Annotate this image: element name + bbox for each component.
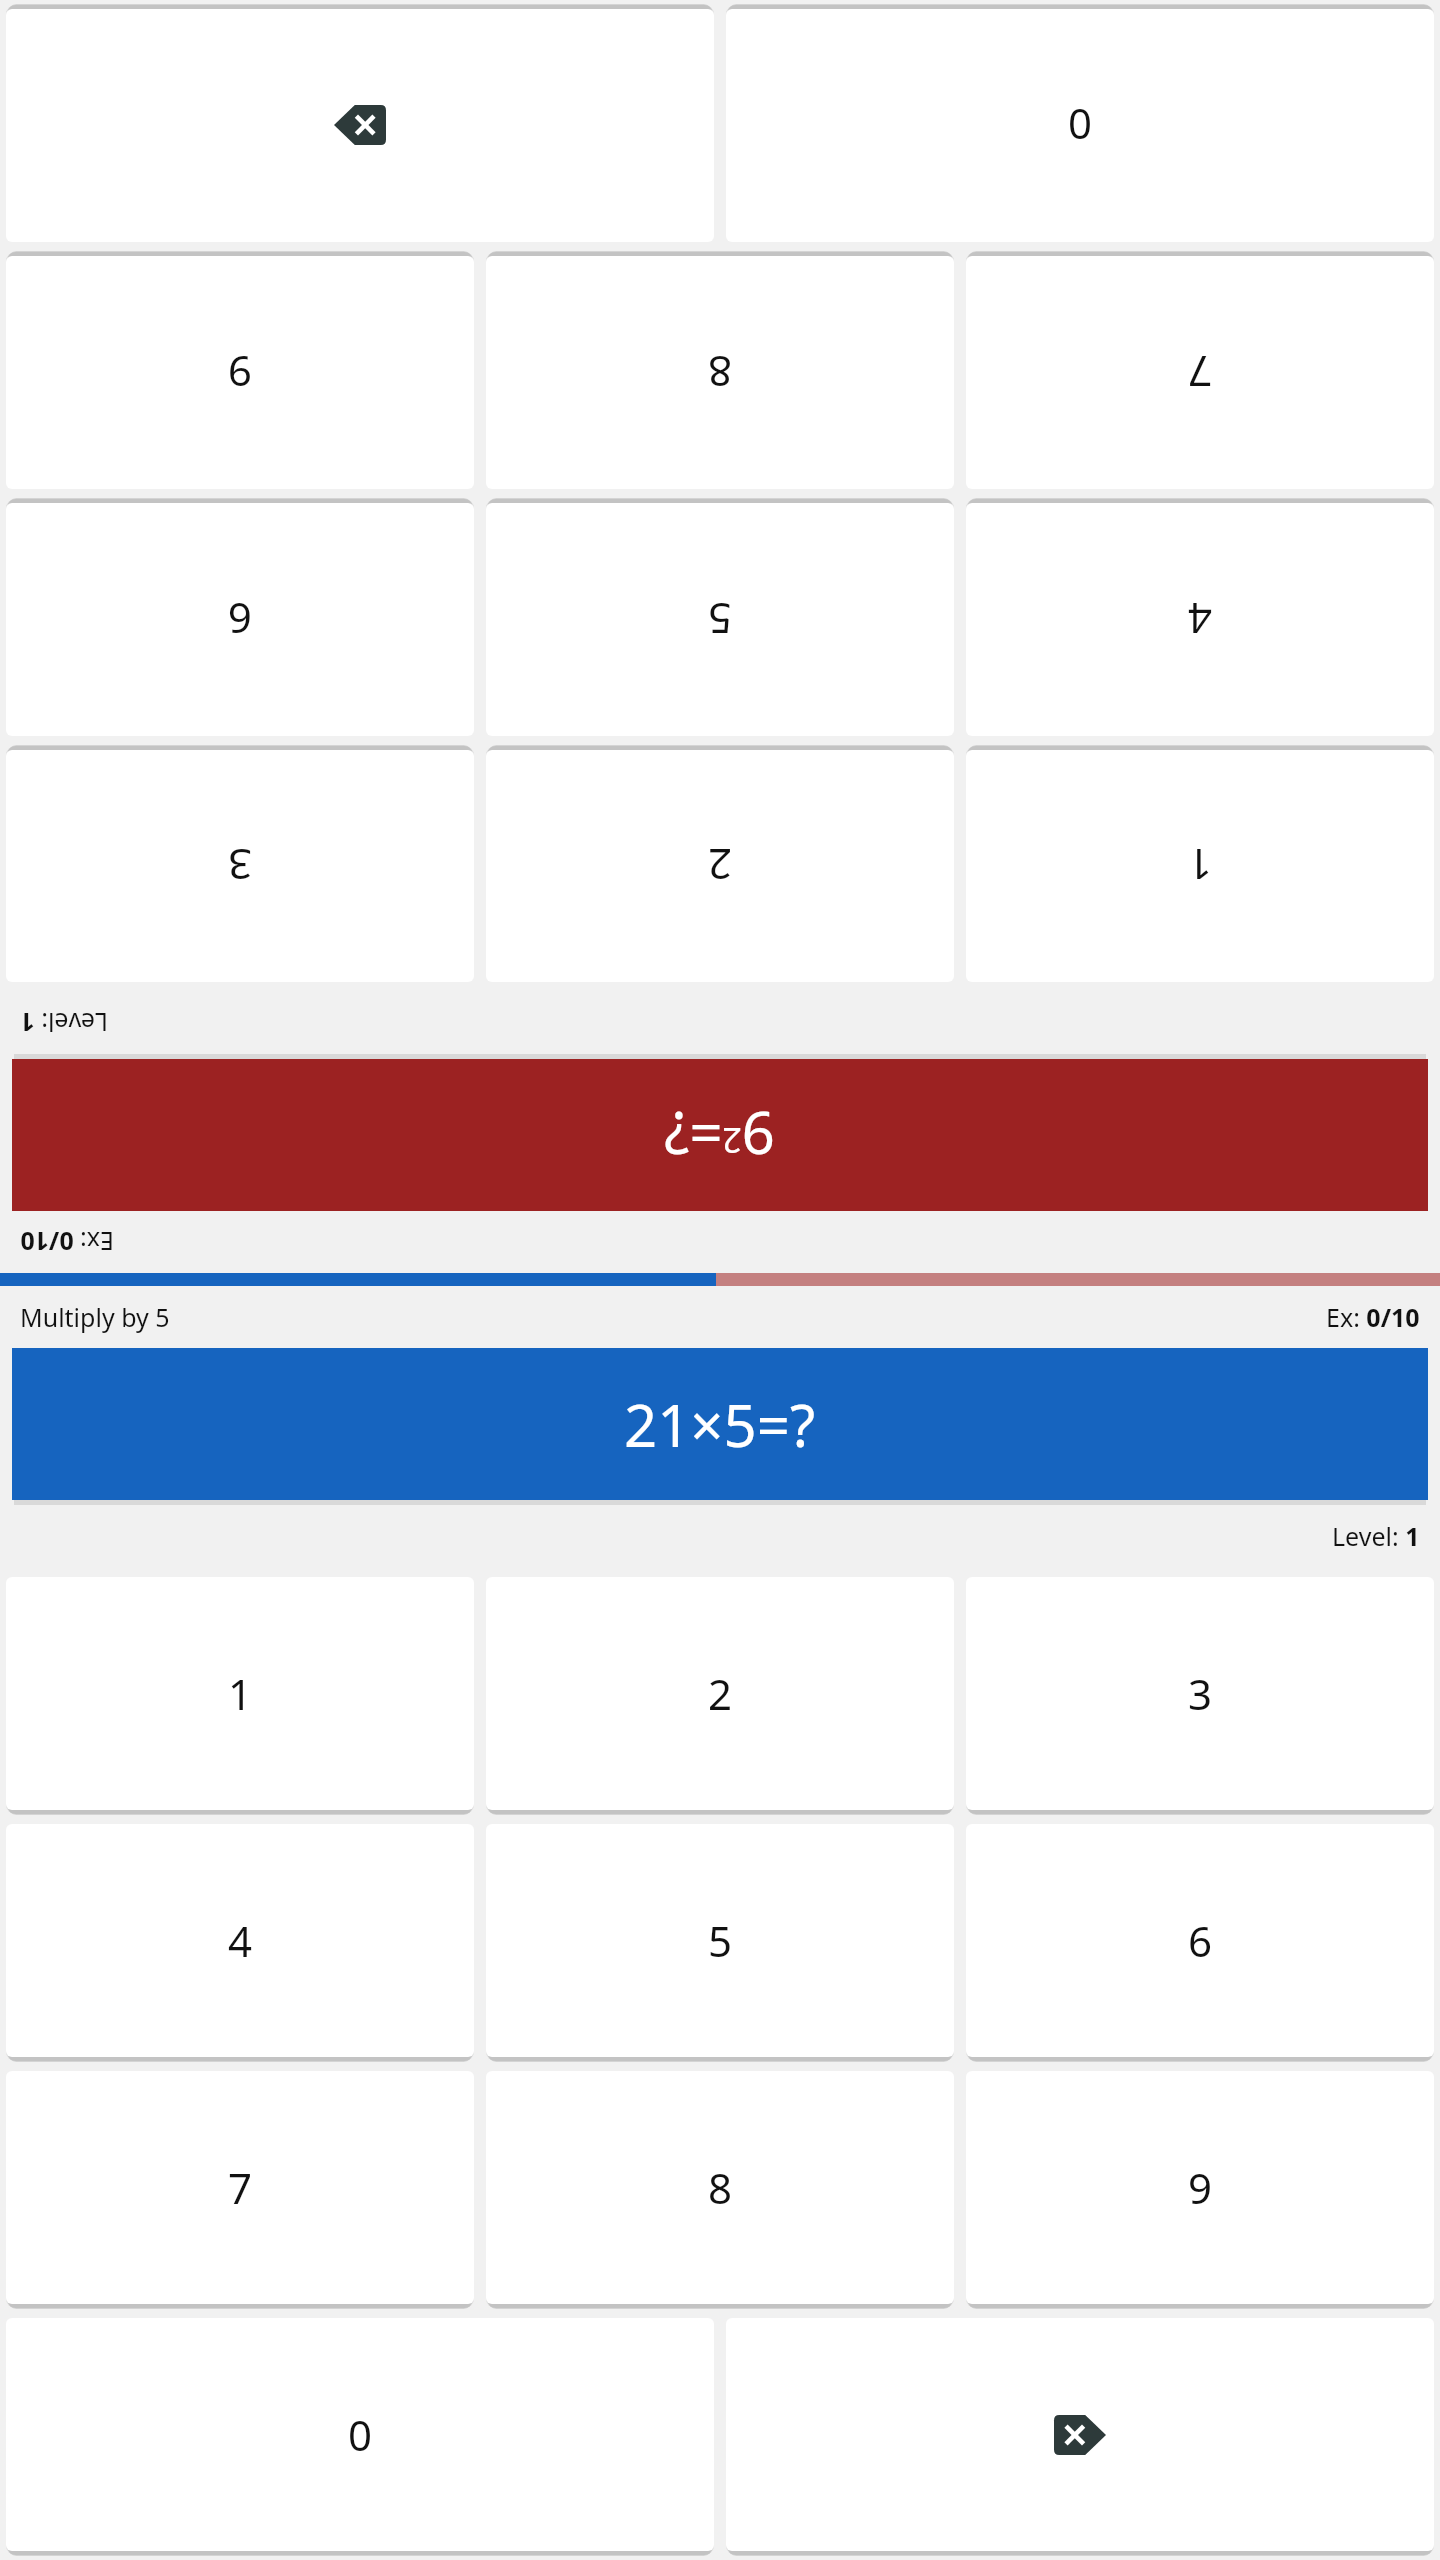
button[interactable]: 1: [966, 750, 1434, 982]
button[interactable]: 0: [726, 9, 1434, 242]
staticText: Ex: 0/10: [20, 1225, 114, 1259]
button[interactable]: 0: [6, 2318, 714, 2551]
button[interactable]: Backspace: [726, 2318, 1434, 2551]
button[interactable]: 3: [6, 750, 474, 982]
button[interactable]: 3: [966, 1577, 1434, 1810]
button[interactable]: 7: [6, 2071, 474, 2304]
staticText: 3: [1188, 1665, 1213, 1722]
staticText: 7: [228, 2159, 253, 2216]
staticText: 0: [348, 2406, 373, 2463]
button[interactable]: 6: [966, 1824, 1434, 2057]
button[interactable]: 8: [486, 256, 954, 489]
button[interactable]: 1: [6, 1577, 474, 1810]
button[interactable]: 7: [966, 256, 1434, 489]
staticText: 9: [1188, 2159, 1213, 2216]
button[interactable]: 21×5=?: [12, 1348, 1428, 1500]
staticText: Level: 1: [1332, 1519, 1420, 1553]
staticText: Ex: 0/10: [1326, 1300, 1420, 1334]
button[interactable]: 2: [486, 1577, 954, 1810]
staticText: 2: [708, 1665, 733, 1722]
button[interactable]: 4: [6, 1824, 474, 2057]
button[interactable]: 9: [966, 2071, 1434, 2304]
button[interactable]: 2: [486, 750, 954, 982]
button[interactable]: 8: [486, 2071, 954, 2304]
staticText: 2: [707, 837, 732, 894]
staticText: 1: [1187, 837, 1212, 894]
staticText: 4: [1187, 591, 1212, 648]
staticText: 0: [1067, 97, 1092, 154]
staticText: 3: [227, 837, 252, 894]
staticText: 6: [227, 591, 252, 648]
staticText: 4: [228, 1912, 253, 1969]
button[interactable]: Backspace: [6, 9, 714, 242]
button[interactable]: 5: [486, 503, 954, 736]
button[interactable]: 4: [966, 503, 1434, 736]
staticText: 21×5=?: [624, 1385, 816, 1464]
staticText: 92=?: [664, 1095, 775, 1174]
staticText: 5: [708, 1912, 733, 1969]
staticText: 9: [227, 344, 252, 401]
button[interactable]: 6: [6, 503, 474, 736]
staticText: 1: [228, 1665, 253, 1722]
button[interactable]: 5: [486, 1824, 954, 2057]
button[interactable]: 92=?: [12, 1059, 1428, 1211]
staticText: 6: [1188, 1912, 1213, 1969]
staticText: 5: [707, 591, 732, 648]
button[interactable]: 9: [6, 256, 474, 489]
staticText: 8: [708, 2159, 733, 2216]
staticText: Multiply by 5: [20, 1300, 170, 1334]
staticText: Level: 1: [20, 1006, 108, 1040]
staticText: 8: [707, 344, 732, 401]
staticText: 7: [1187, 344, 1212, 401]
